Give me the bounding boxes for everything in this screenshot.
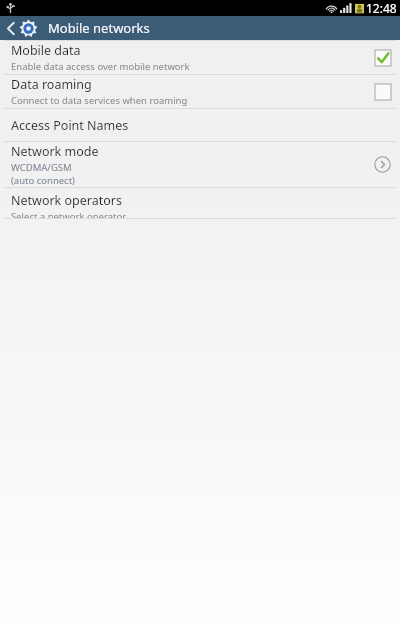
button[interactable]: Network operators — [0, 188, 400, 218]
button[interactable]: Network mode — [0, 142, 400, 187]
staticText: Mobile networks — [48, 19, 150, 37]
staticText: 12:48 — [366, 0, 397, 16]
staticText: Mobile data — [11, 42, 81, 59]
staticText: Data roaming — [11, 76, 92, 93]
staticText: Network operators — [11, 192, 122, 209]
button[interactable]: Mobile data — [0, 41, 400, 74]
staticText: Access Point Names — [11, 117, 129, 134]
staticText: Select a network operator — [11, 210, 127, 218]
staticText: Network mode — [11, 143, 99, 160]
button[interactable]: Navigate up — [0, 16, 44, 40]
staticText: Connect to data services when roaming — [11, 94, 188, 107]
staticText: Enable data access over mobile network — [11, 60, 190, 73]
staticText: (auto connect) — [11, 174, 75, 187]
button[interactable]: Access Point Names — [0, 109, 400, 141]
button[interactable]: Data roaming — [0, 75, 400, 108]
staticText: WCDMA/GSM — [11, 161, 72, 174]
